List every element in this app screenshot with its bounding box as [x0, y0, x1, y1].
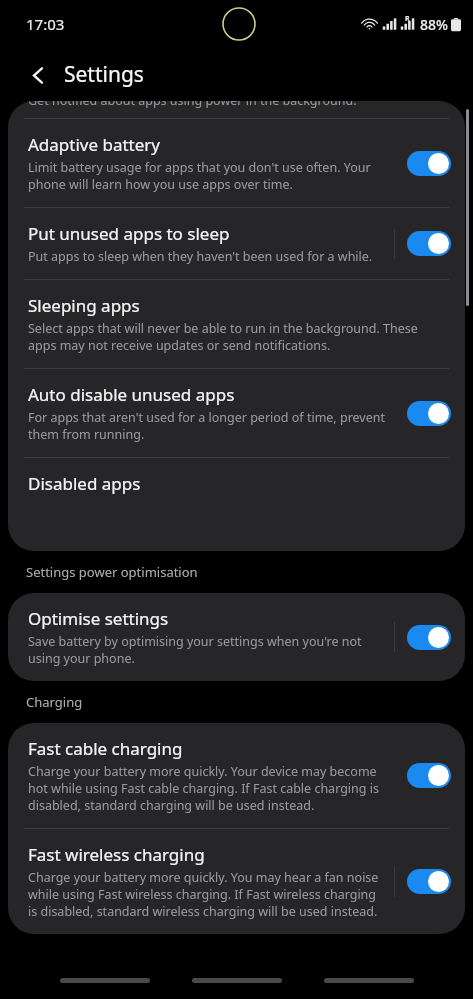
staticText: Adaptive battery — [28, 133, 161, 156]
button[interactable]: Toggle on — [407, 151, 451, 176]
button[interactable]: Disabled apps — [8, 458, 465, 509]
staticText: Disabled apps — [28, 472, 141, 495]
staticText: Charge your battery more quickly. Your d… — [28, 763, 386, 814]
button[interactable]: Fast cable charging — [8, 723, 465, 828]
button[interactable]: Auto disable unused apps — [8, 369, 465, 457]
staticText: For apps that aren't used for a longer p… — [28, 409, 386, 443]
staticText: Charge your battery more quickly. You ma… — [28, 869, 386, 920]
button[interactable]: Toggle on — [407, 625, 451, 650]
staticText: Optimise settings — [28, 607, 169, 630]
staticText: Charging — [26, 693, 83, 711]
staticText: Put unused apps to sleep — [28, 222, 230, 245]
button[interactable]: Toggle on — [407, 401, 451, 426]
button[interactable]: Toggle on — [407, 231, 451, 256]
staticText: Limit battery usage for apps that you do… — [28, 159, 386, 193]
staticText: Sleeping apps — [28, 294, 140, 317]
staticText: Fast cable charging — [28, 737, 183, 760]
button[interactable]: Back — [16, 53, 60, 97]
button[interactable]: Toggle on — [407, 869, 451, 894]
button[interactable]: Navigation button — [324, 969, 414, 991]
staticText: Get notified about apps using power in t… — [28, 101, 357, 109]
staticText: Put apps to sleep when they haven't been… — [28, 248, 373, 265]
button[interactable]: Optimise settings — [8, 593, 465, 681]
staticText: Select apps that will never be able to r… — [28, 320, 443, 354]
staticText: R — [405, 14, 410, 24]
button[interactable]: Adaptive battery — [8, 119, 465, 207]
button[interactable]: Toggle on — [407, 763, 451, 788]
button[interactable]: Navigation button — [60, 969, 150, 991]
staticText: 17:03 — [26, 14, 65, 34]
staticText: Auto disable unused apps — [28, 383, 235, 406]
button[interactable]: Put unused apps to sleep — [8, 208, 465, 279]
staticText: Save battery by optimising your settings… — [28, 633, 386, 667]
button[interactable]: Fast wireless charging — [8, 829, 465, 934]
staticText: 88% — [420, 15, 448, 34]
staticText: Settings — [64, 60, 144, 89]
button[interactable]: Sleeping apps — [8, 280, 465, 368]
button[interactable]: Navigation button — [192, 969, 282, 991]
staticText: Settings power optimisation — [26, 563, 198, 581]
staticText: Fast wireless charging — [28, 843, 205, 866]
